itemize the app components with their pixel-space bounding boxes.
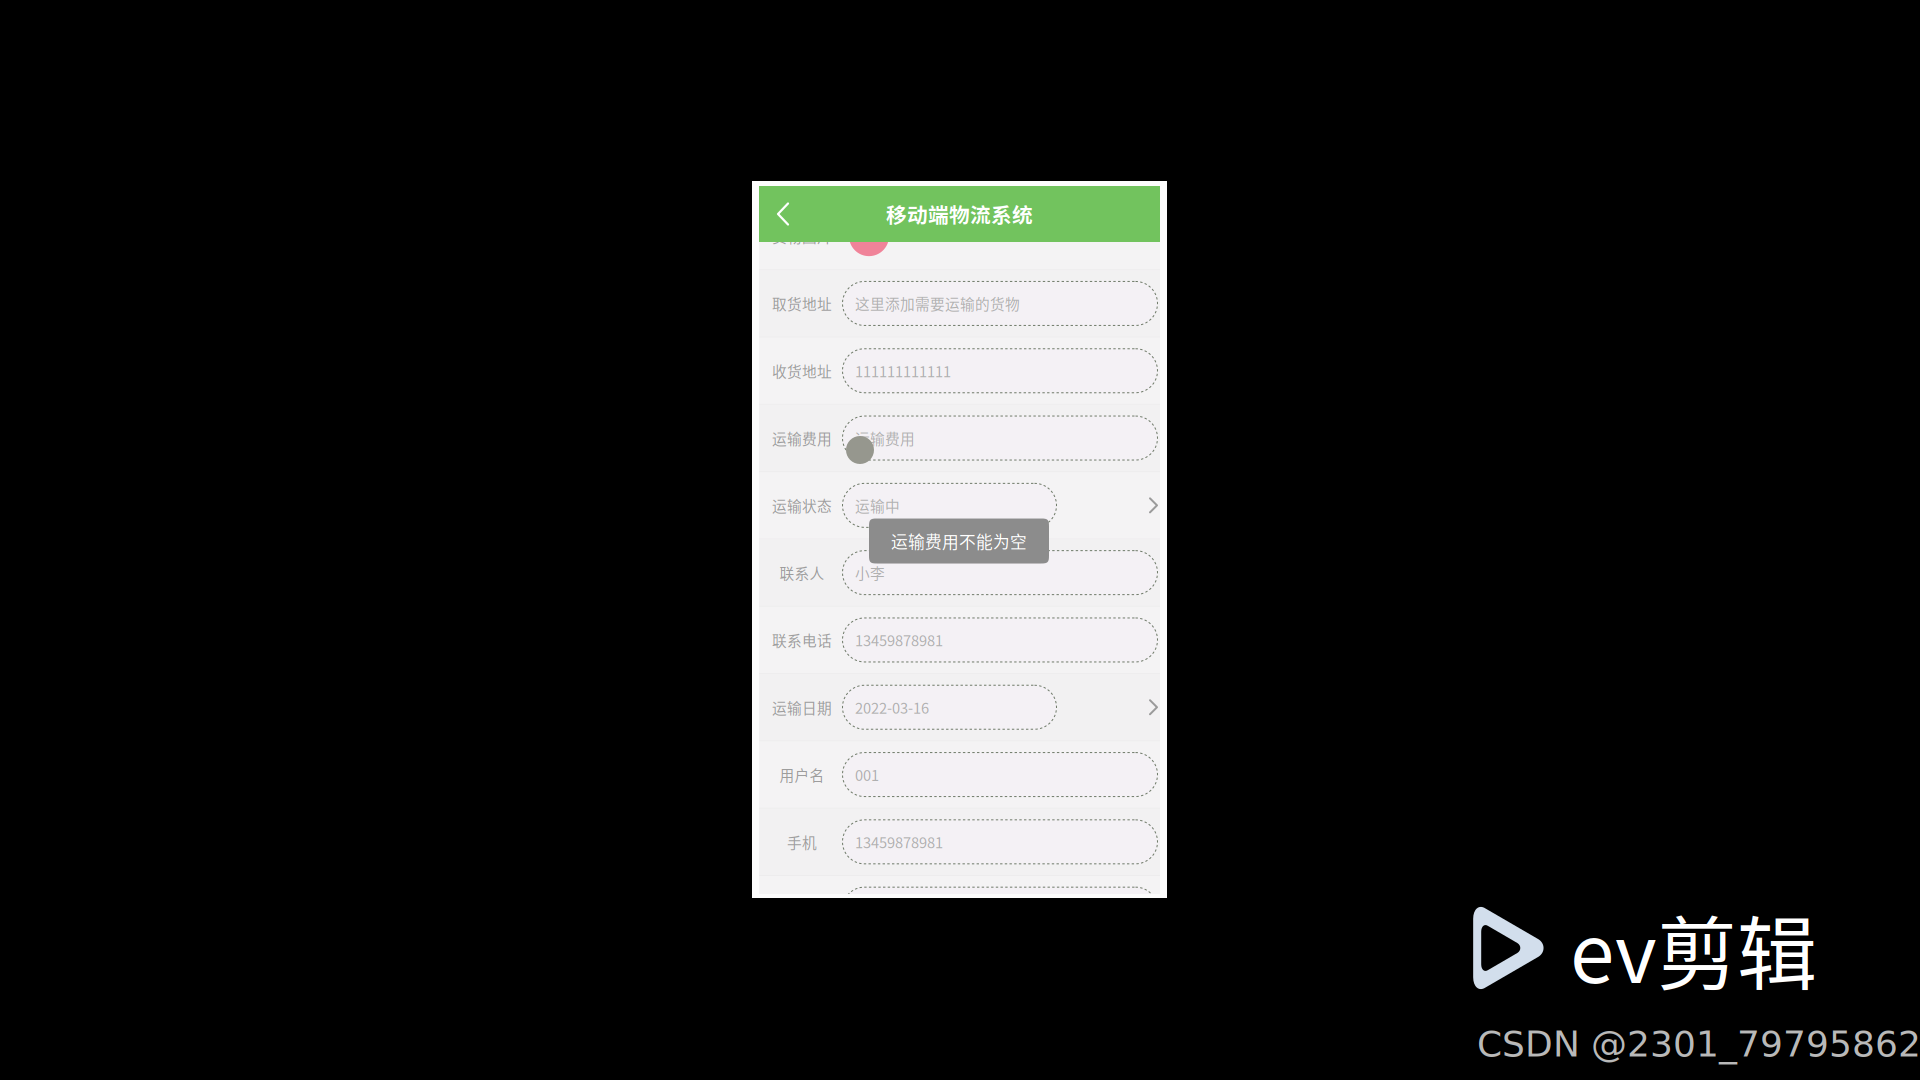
button[interactable]: 身份证	[759, 876, 1160, 943]
staticText: 手机	[787, 831, 817, 852]
staticText: 联系人	[779, 562, 824, 583]
staticText: 13459878981	[855, 629, 943, 650]
staticText: 联系电话	[772, 629, 832, 650]
staticText: 运输费用	[855, 427, 915, 449]
staticText: 取货地址	[772, 293, 832, 314]
staticText: 货物图片	[772, 225, 832, 247]
button[interactable]: 货物图片	[759, 203, 1160, 270]
staticText: 移动端物流系统	[886, 199, 1033, 229]
staticText: 运输日期	[772, 697, 832, 718]
button[interactable]: 返回	[759, 186, 807, 242]
staticText: 2022-03-16	[855, 697, 929, 718]
staticText: 001	[855, 764, 879, 785]
button[interactable]: 手机	[759, 809, 1160, 876]
staticText: 13459878981	[855, 831, 943, 852]
staticText: 运输费用不能为空	[891, 529, 1027, 553]
button[interactable]: 运输费用	[759, 405, 1160, 472]
button[interactable]: 联系电话	[759, 607, 1160, 674]
staticText: 运输状态	[772, 495, 832, 516]
staticText: 这里添加需要运输的货物	[855, 293, 1020, 314]
staticText: 小李	[855, 562, 885, 583]
staticText: 运输中	[855, 495, 900, 516]
button[interactable]: 联系人	[759, 539, 1160, 607]
button[interactable]: 收货地址	[759, 338, 1160, 405]
staticText: CSDN @2301_79795862	[1477, 1023, 1920, 1065]
button[interactable]: 运输日期	[759, 674, 1160, 741]
button[interactable]: 运输状态	[759, 472, 1160, 539]
button[interactable]: 用户名	[759, 741, 1160, 809]
staticText: ev剪辑	[1570, 890, 1817, 1006]
staticText: 运输费用	[772, 427, 832, 449]
button[interactable]: 取货地址	[759, 270, 1160, 338]
staticText: 用户名	[779, 764, 824, 785]
staticText: 111111111111	[855, 360, 951, 381]
staticText: 收货地址	[772, 360, 832, 381]
